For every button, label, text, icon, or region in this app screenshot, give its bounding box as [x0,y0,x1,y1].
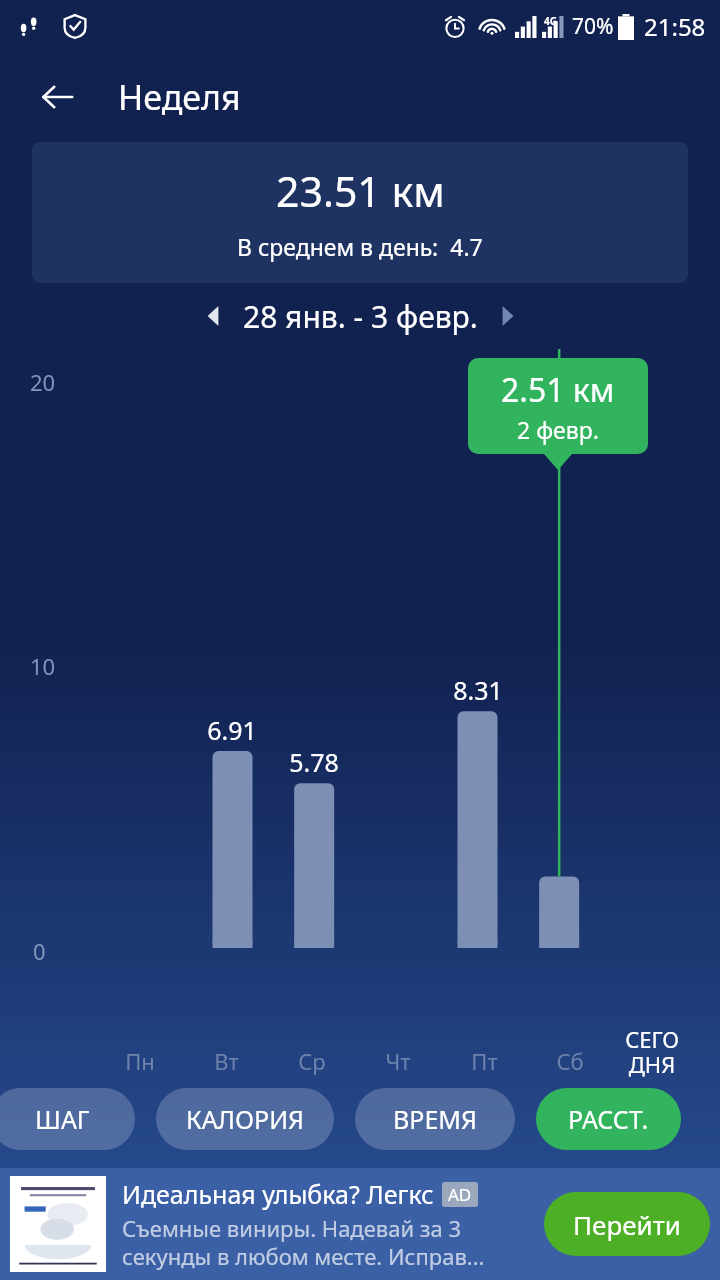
button[interactable]: ШАГ [0,1088,135,1150]
staticText: ВРЕМЯ [393,1102,477,1136]
button[interactable]: Previous week [191,293,237,339]
button[interactable]: 23.51 км [32,142,688,283]
button[interactable]: Next week [484,293,530,339]
staticText: Съемные виниры. Надевай за 3 секунды в л… [122,1213,534,1271]
staticText: Неделя [118,74,241,120]
staticText: Идеальная улыбка? Легкс [122,1177,434,1211]
staticText: Чт [385,1046,411,1076]
staticText: Перейти [573,1207,681,1242]
staticText: Сб [556,1046,584,1076]
button[interactable]: Back [26,66,88,128]
button[interactable]: 2.51 км [468,358,648,454]
button[interactable]: Идеальная улыбка? Легкс [10,1168,710,1280]
staticText: 70% [572,12,614,41]
staticText: 0 [33,936,46,966]
button[interactable]: Перейти [544,1192,710,1256]
button[interactable]: РАССТ. [536,1088,681,1150]
staticText: 10 [30,651,56,681]
staticText: ШАГ [35,1102,90,1136]
staticText: СЕГОДНЯ [622,1024,682,1080]
staticText: 8.31 [438,673,518,707]
staticText: 21:58 [644,10,706,43]
staticText: Пт [471,1046,498,1076]
button[interactable]: ВРЕМЯ [355,1088,515,1150]
staticText: Пн [125,1046,155,1076]
staticText: 5.78 [274,745,354,779]
staticText: КАЛОРИЯ [186,1102,305,1136]
staticText: В среднем в день: 4.7 [237,231,483,262]
staticText: РАССТ. [568,1102,649,1136]
staticText: 20 [30,367,56,397]
staticText: 2 февр. [517,414,599,445]
staticText: Вт [214,1046,239,1076]
staticText: 23.51 км [276,163,445,219]
staticText: 28 янв. - 3 февр. [243,296,478,337]
button[interactable]: КАЛОРИЯ [156,1088,334,1150]
staticText: 4G [544,14,557,28]
staticText: 6.91 [192,713,272,747]
staticText: 2.51 км [501,368,615,412]
staticText: AD [448,1183,472,1206]
staticText: Ср [298,1046,326,1076]
